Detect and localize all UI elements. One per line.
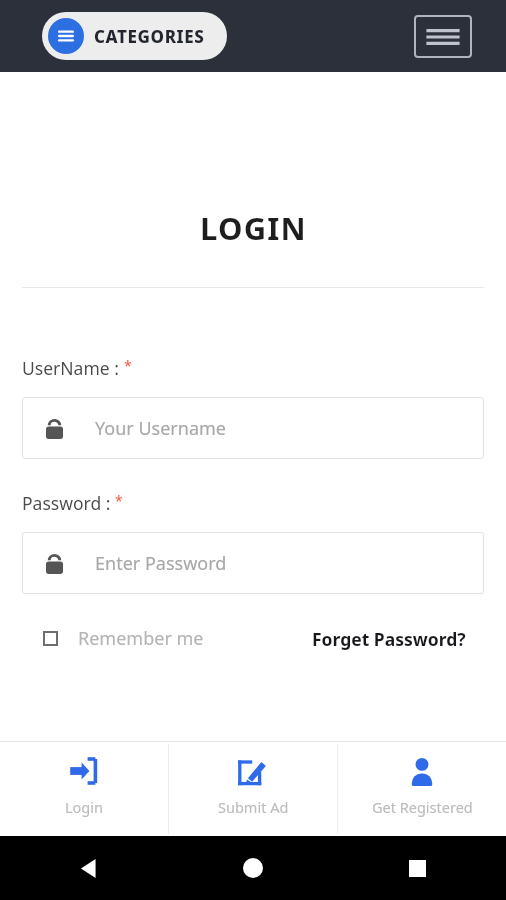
button[interactable]: Forget Password? bbox=[312, 627, 466, 651]
staticText: Login bbox=[65, 797, 103, 817]
button[interactable]: Home bbox=[236, 851, 270, 885]
staticText: CATEGORIES bbox=[94, 25, 205, 48]
button[interactable]: Get Registered bbox=[338, 742, 506, 836]
staticText: Forget Password? bbox=[312, 627, 466, 651]
staticText: Your Username bbox=[95, 416, 226, 441]
staticText: LOGIN bbox=[200, 207, 307, 249]
button[interactable]: Login bbox=[0, 742, 168, 836]
button[interactable]: CATEGORIES bbox=[42, 12, 227, 60]
button[interactable]: Recent apps bbox=[400, 851, 434, 885]
staticText: Enter Password bbox=[95, 551, 227, 576]
button[interactable]: Back bbox=[72, 851, 106, 885]
button[interactable]: Your Username bbox=[22, 397, 484, 459]
staticText: Password : bbox=[22, 491, 115, 515]
staticText: Remember me bbox=[78, 626, 204, 651]
button[interactable]: Submit Ad bbox=[169, 742, 337, 836]
staticText: Get Registered bbox=[372, 797, 473, 817]
staticText: Submit Ad bbox=[218, 797, 289, 817]
staticText: * bbox=[115, 491, 123, 510]
button[interactable]: Enter Password bbox=[22, 532, 484, 594]
staticText: * bbox=[124, 356, 132, 375]
staticText: UserName : bbox=[22, 356, 124, 380]
button[interactable]: Remember me bbox=[43, 626, 204, 651]
button[interactable]: Open navigation menu bbox=[414, 15, 472, 58]
